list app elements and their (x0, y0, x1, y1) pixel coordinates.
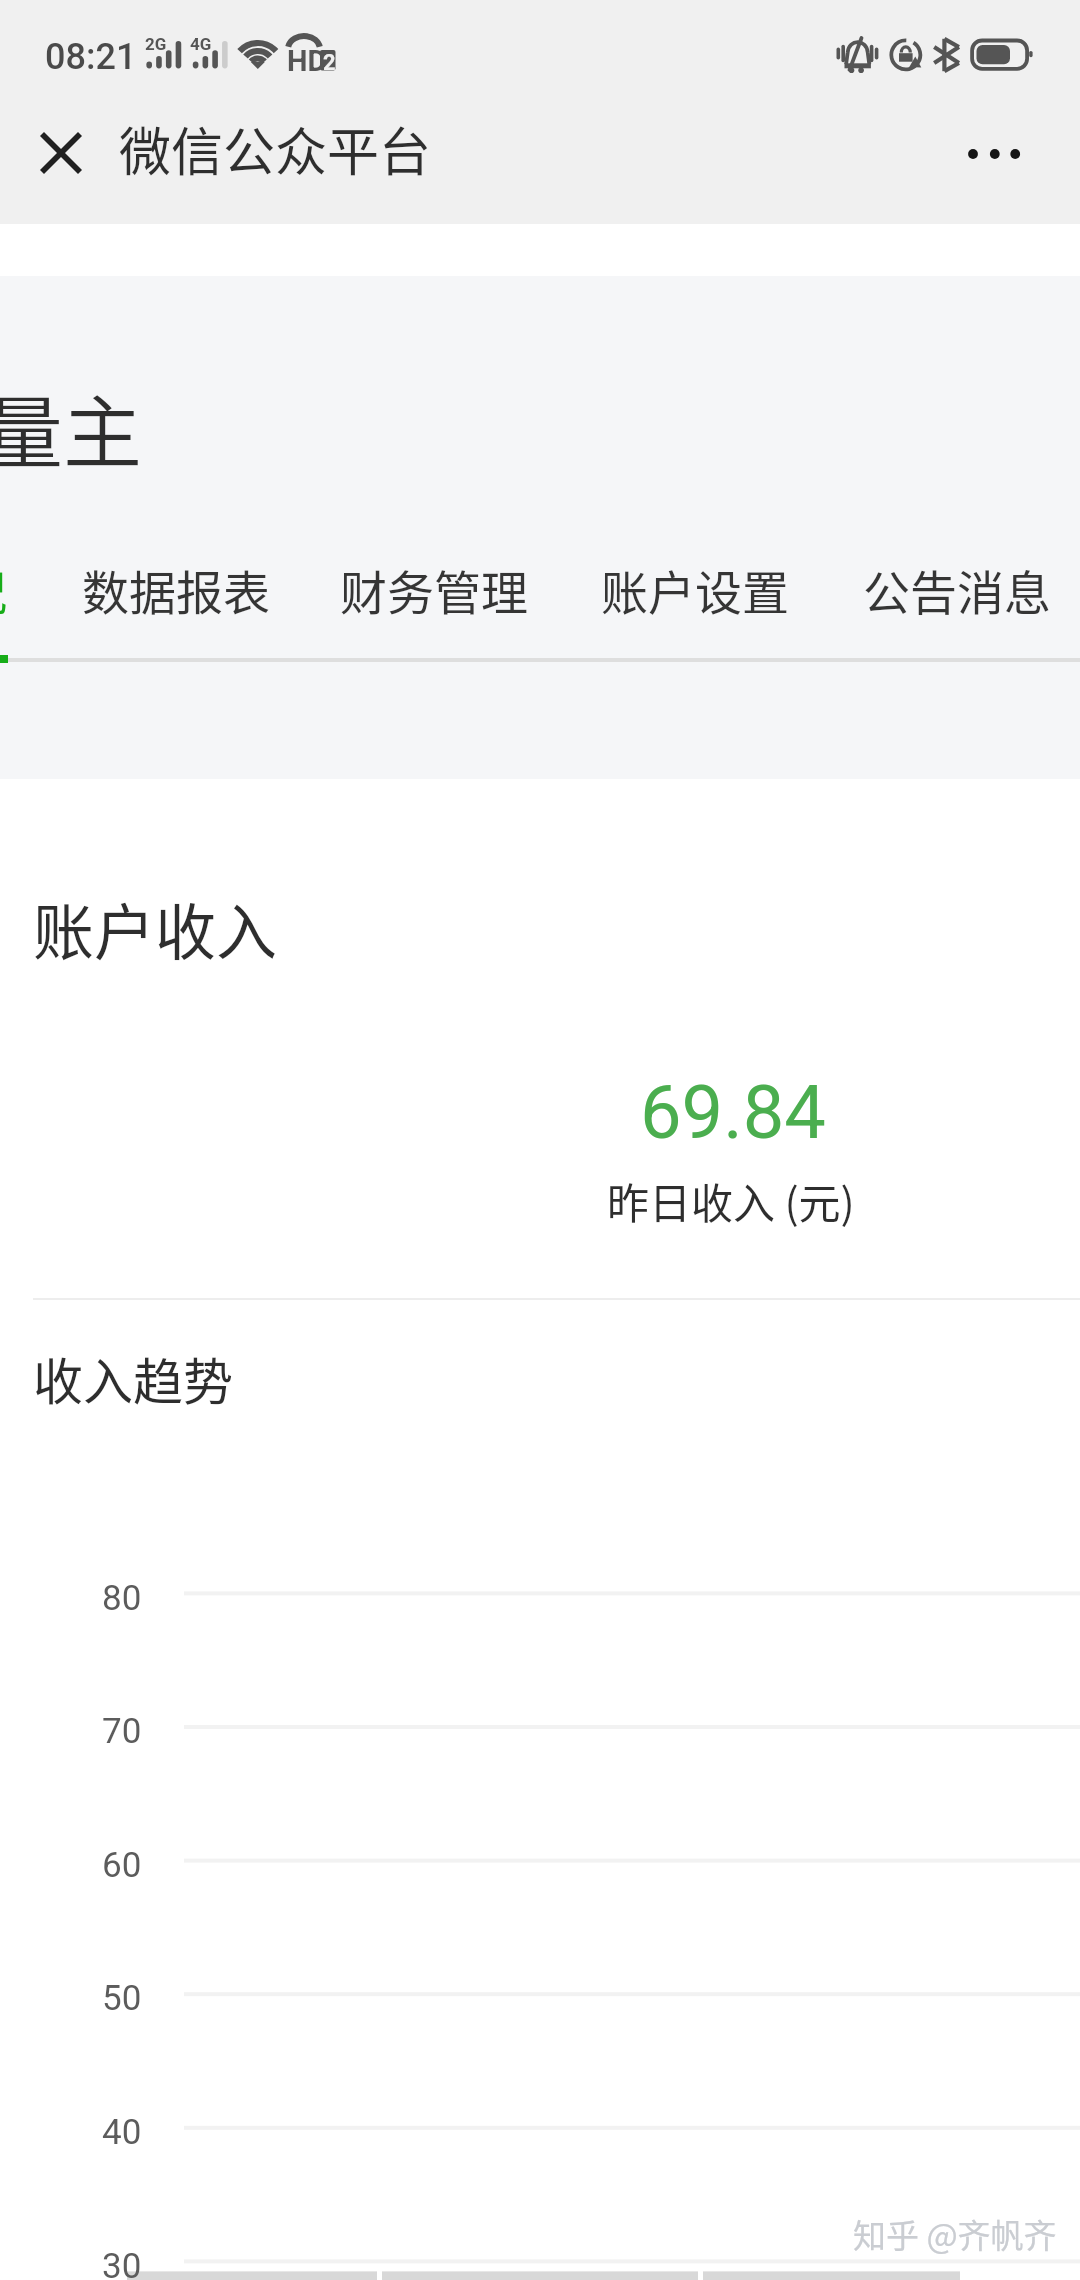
staticText: 50 (102, 1978, 142, 2019)
staticText: 昨日收入 (元) (607, 1170, 855, 1231)
staticText: 账户设置 (601, 555, 789, 623)
staticText: HD (287, 44, 327, 78)
staticText: 80 (102, 1578, 142, 1619)
staticText: 量主 (0, 370, 142, 484)
staticText: 财务管理 (340, 555, 528, 623)
staticText: 69.84 (640, 1069, 826, 1156)
staticText: 08:21 (45, 36, 137, 78)
staticText: 公告消息 (863, 555, 1051, 623)
button[interactable]: Close (10, 114, 110, 214)
button[interactable]: 公告消息 (863, 555, 1051, 659)
staticText: 数据报表 (82, 555, 270, 623)
staticText: 微信公众平台 (119, 111, 432, 186)
staticText: 30 (102, 2246, 142, 2280)
staticText: 账户收入 (33, 884, 278, 972)
staticText: 60 (102, 1845, 142, 1886)
staticText: 4G (190, 34, 212, 54)
button[interactable]: 财务管理 (340, 555, 528, 659)
staticText: 2G (145, 34, 167, 54)
staticText: 2 (323, 50, 336, 76)
staticText: 知乎 @齐帆齐 (853, 2210, 1057, 2258)
staticText: 40 (102, 2112, 142, 2153)
button[interactable]: 账户设置 (601, 555, 789, 659)
staticText: 收入趋势 (33, 1342, 233, 1414)
button[interactable]: 数据报表 (82, 555, 270, 659)
staticText: 70 (102, 1711, 142, 1752)
staticText: 况 (0, 555, 7, 623)
button[interactable]: 况 (0, 555, 7, 659)
button[interactable]: More options (944, 114, 1044, 214)
